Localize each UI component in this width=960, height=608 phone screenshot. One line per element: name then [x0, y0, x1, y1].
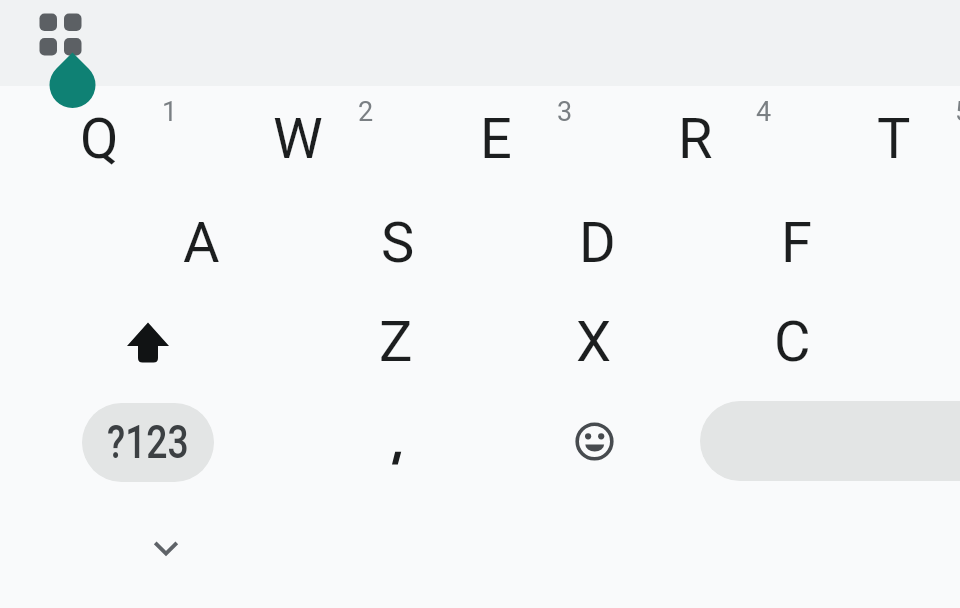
staticText: D	[579, 210, 616, 276]
button[interactable]: W	[213, 91, 383, 187]
staticText: 4	[756, 96, 772, 128]
button[interactable]	[98, 292, 198, 392]
button[interactable]	[33, 7, 89, 63]
button[interactable]: A	[116, 195, 286, 291]
button[interactable]	[45, 55, 100, 110]
button[interactable]	[700, 401, 960, 481]
button[interactable]: X	[509, 294, 679, 390]
button[interactable]: E	[411, 91, 581, 187]
staticText: 1	[162, 96, 178, 128]
staticText: ?123	[107, 416, 189, 469]
staticText: W	[273, 106, 323, 172]
staticText: 5	[955, 96, 960, 128]
staticText: F	[781, 210, 812, 276]
button[interactable]: T	[809, 91, 960, 187]
staticText: E	[480, 106, 512, 172]
staticText: S	[381, 210, 415, 276]
button[interactable]	[346, 392, 446, 492]
staticText: T	[877, 106, 911, 172]
staticText: Q	[80, 106, 119, 172]
staticText: X	[576, 309, 612, 375]
button[interactable]: C	[707, 294, 877, 390]
staticText: Z	[379, 309, 413, 375]
button[interactable]: Z	[311, 294, 481, 390]
button[interactable]: Q	[14, 91, 184, 187]
button[interactable]	[544, 392, 644, 492]
button[interactable]: F	[711, 195, 881, 291]
staticText: 2	[358, 96, 374, 128]
staticText: R	[678, 106, 713, 172]
button[interactable]: R	[610, 91, 780, 187]
button[interactable]: D	[512, 195, 682, 291]
button[interactable]	[116, 498, 216, 598]
staticText: A	[183, 210, 220, 276]
button[interactable]: ?123	[82, 403, 214, 482]
staticText: 3	[557, 96, 573, 128]
button[interactable]: S	[313, 195, 483, 291]
staticText: C	[774, 309, 811, 375]
